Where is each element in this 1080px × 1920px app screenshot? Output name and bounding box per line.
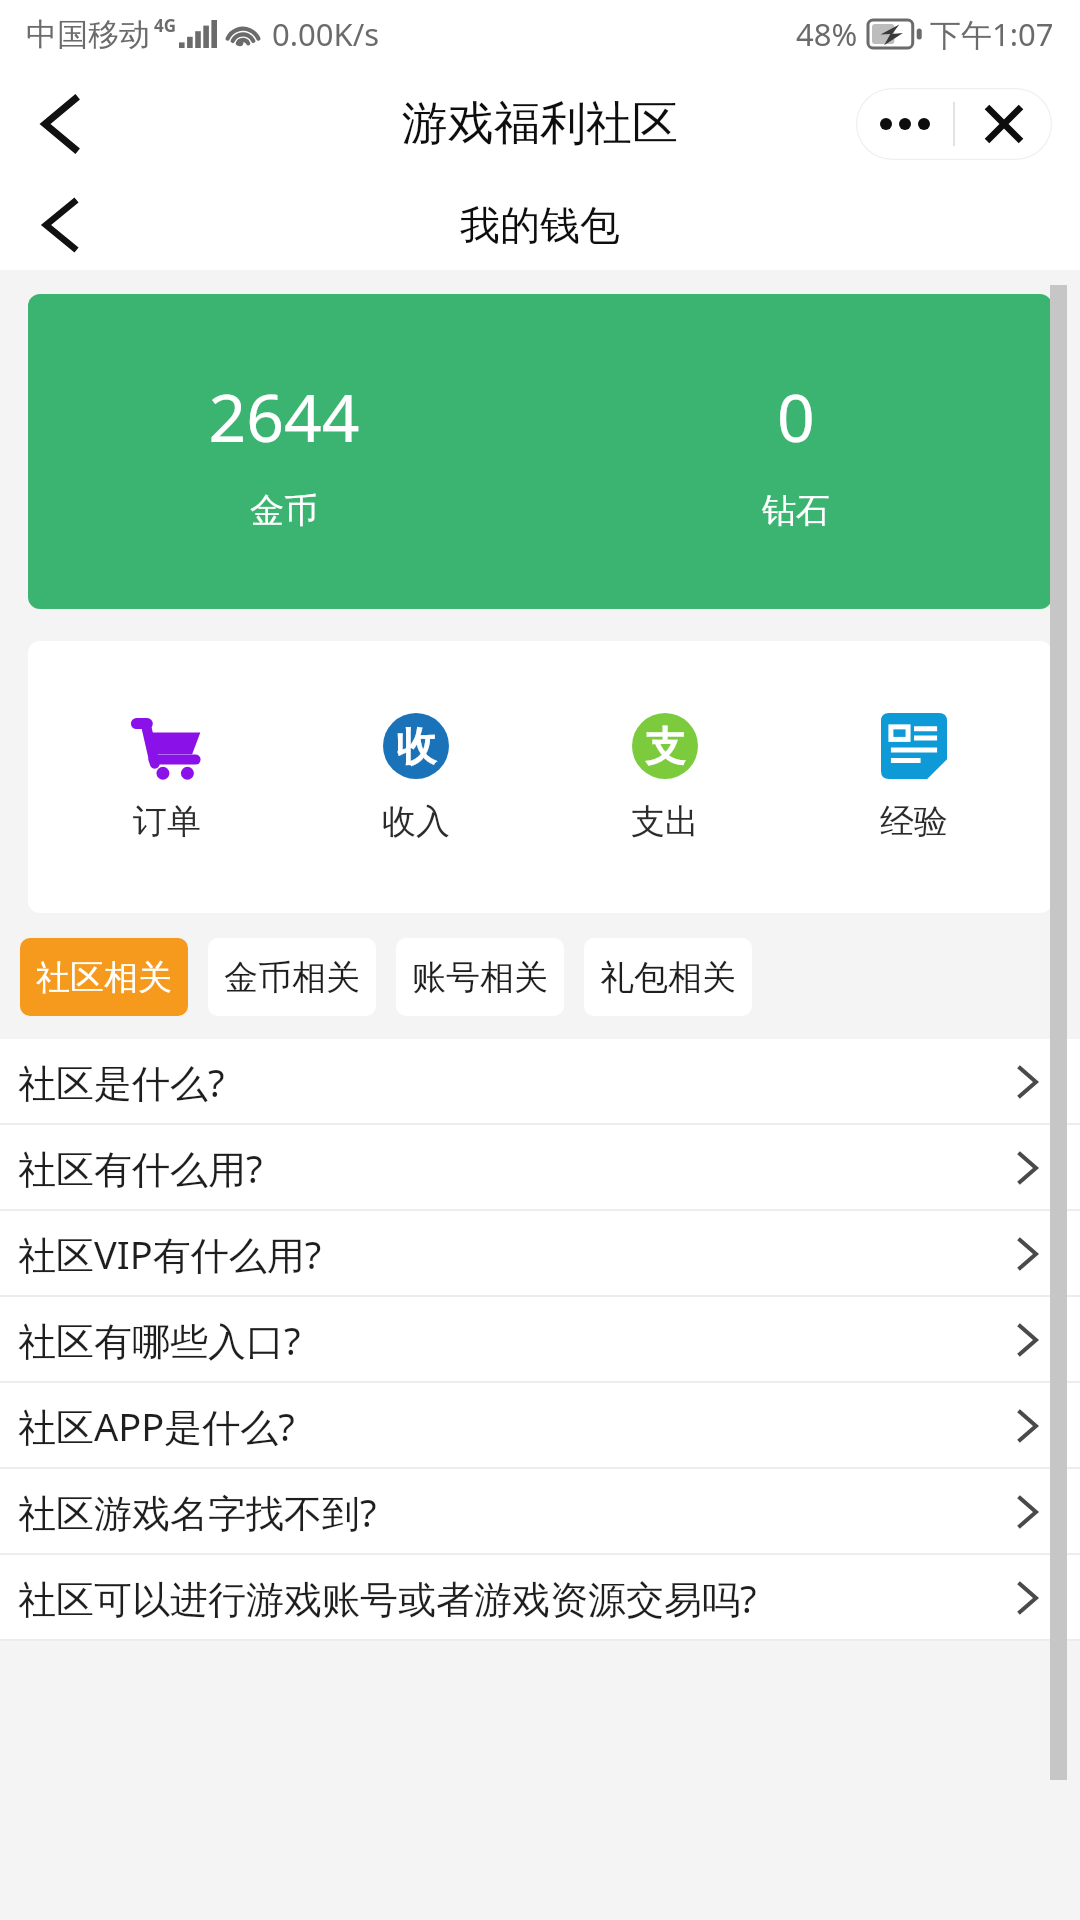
staticText: 社区有什么用? <box>18 1142 263 1194</box>
staticText: 社区游戏名字找不到? <box>18 1486 377 1538</box>
button[interactable]: 2644 <box>28 294 1052 609</box>
button[interactable]: 社区有什么用? <box>0 1125 1080 1211</box>
staticText: 下午1:07 <box>930 13 1054 55</box>
staticText: 支 <box>645 721 685 771</box>
staticText: 订单 <box>133 800 201 843</box>
staticText: 经验 <box>880 800 948 843</box>
staticText: 钻石 <box>762 489 830 532</box>
button[interactable]: 社区VIP有什么用? <box>0 1211 1080 1297</box>
button[interactable]: 经验 <box>789 641 1038 913</box>
staticText: 收 <box>396 721 436 771</box>
button[interactable]: Close <box>955 88 1052 160</box>
staticText: 支出 <box>631 800 699 843</box>
staticText: 0.00K/s <box>272 13 380 55</box>
staticText: 我的钱包 <box>460 200 620 250</box>
staticText: 礼包相关 <box>600 956 736 999</box>
button[interactable]: 社区有哪些入口? <box>0 1297 1080 1383</box>
button[interactable]: 账号相关 <box>396 938 564 1016</box>
button[interactable]: 社区是什么? <box>0 1039 1080 1125</box>
button[interactable]: 收 <box>291 641 540 913</box>
staticText: 4G <box>154 14 177 37</box>
staticText: 中国移动 <box>26 15 150 54</box>
staticText: 48% <box>796 13 858 55</box>
staticText: 社区相关 <box>36 956 172 999</box>
staticText: 0 <box>777 371 815 461</box>
button[interactable]: 社区相关 <box>20 938 188 1016</box>
button[interactable]: 社区APP是什么? <box>0 1383 1080 1469</box>
button[interactable]: 社区游戏名字找不到? <box>0 1469 1080 1555</box>
button[interactable]: 社区可以进行游戏账号或者游戏资源交易吗? <box>0 1555 1080 1641</box>
staticText: 社区是什么? <box>18 1056 225 1108</box>
staticText: 社区APP是什么? <box>18 1400 295 1452</box>
staticText: 账号相关 <box>412 956 548 999</box>
button[interactable]: 订单 <box>42 641 291 913</box>
staticText: 社区VIP有什么用? <box>18 1228 322 1280</box>
staticText: 金币 <box>250 489 318 532</box>
button[interactable]: More options <box>856 88 953 160</box>
staticText: 金币相关 <box>224 956 360 999</box>
button[interactable]: Back <box>22 86 98 162</box>
button[interactable]: 礼包相关 <box>584 938 752 1016</box>
staticText: 游戏福利社区 <box>402 95 678 153</box>
staticText: 收入 <box>382 800 450 843</box>
staticText: 2644 <box>208 371 360 461</box>
button[interactable]: 支 <box>540 641 789 913</box>
button[interactable]: Back <box>22 187 98 263</box>
staticText: 社区有哪些入口? <box>18 1314 301 1366</box>
staticText: 社区可以进行游戏账号或者游戏资源交易吗? <box>18 1572 757 1624</box>
button[interactable]: 金币相关 <box>208 938 376 1016</box>
